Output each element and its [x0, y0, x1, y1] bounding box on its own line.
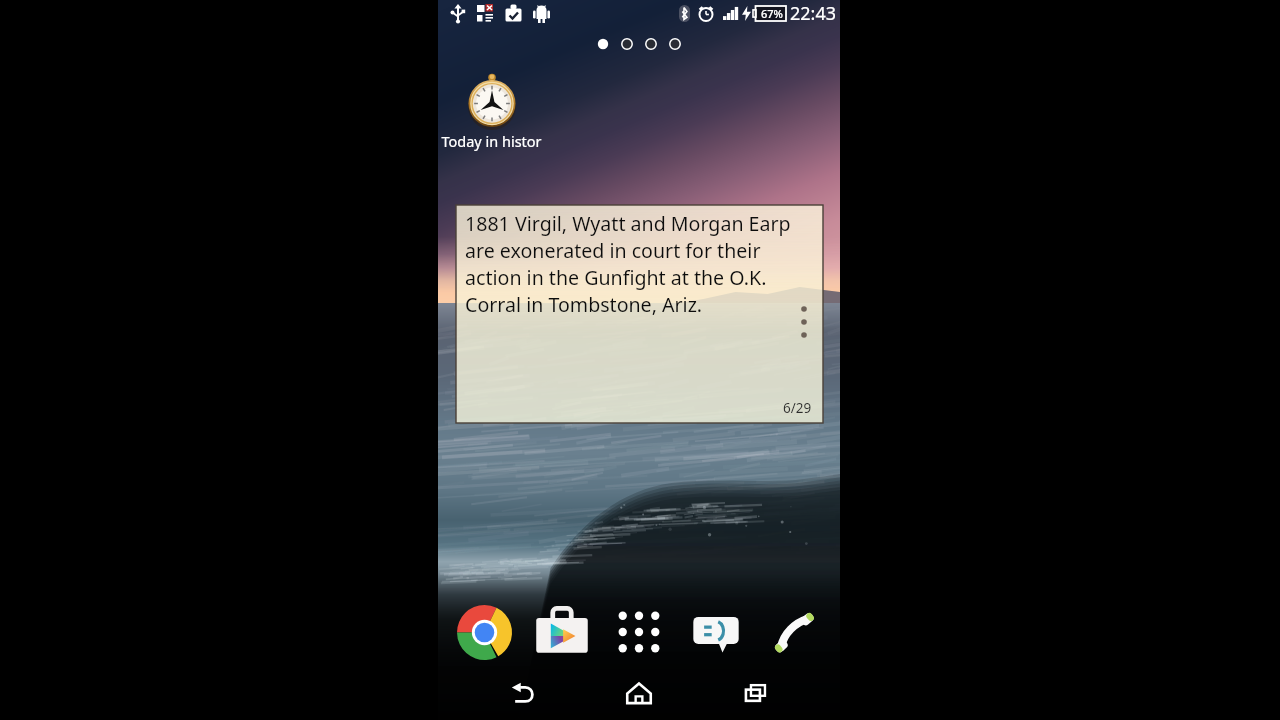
button[interactable]: Apps	[608, 601, 670, 663]
button[interactable]: More options	[800, 305, 808, 337]
button[interactable]: Messaging	[685, 601, 747, 663]
button[interactable]: Today in histor	[441, 72, 542, 151]
button[interactable]: Chrome	[453, 601, 515, 663]
button[interactable]: Play Store	[531, 601, 593, 663]
button[interactable]: 1881 Virgil, Wyatt and Morgan Earp	[456, 205, 823, 423]
staticText: 67%	[761, 6, 783, 21]
button[interactable]: Phone	[763, 601, 825, 663]
staticText: Today in histor	[441, 131, 542, 151]
staticText: 22:43	[790, 1, 837, 26]
button[interactable]: Recents	[724, 666, 788, 720]
staticText: Corral in Tombstone, Ariz.	[465, 291, 703, 318]
staticText: action in the Gunfight at the O.K.	[465, 264, 767, 291]
staticText: are exonerated in court for their	[465, 237, 761, 264]
staticText: 6/29	[783, 399, 812, 417]
button[interactable]: Home	[607, 666, 671, 720]
staticText: 1881 Virgil, Wyatt and Morgan Earp	[465, 210, 791, 237]
button[interactable]: Back	[491, 666, 555, 720]
